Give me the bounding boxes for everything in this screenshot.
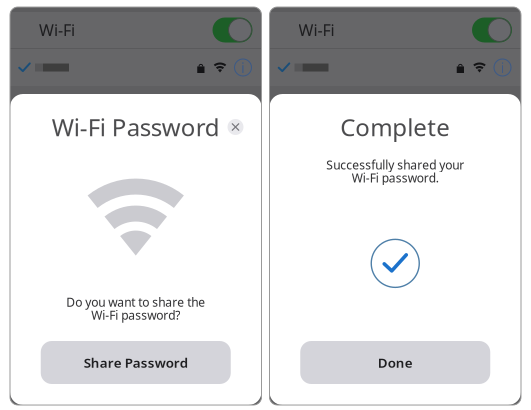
staticText: Do you want to share the bbox=[66, 294, 205, 310]
staticText: Done bbox=[378, 354, 413, 371]
button[interactable]: Done bbox=[300, 341, 490, 384]
staticText: Successfully shared your bbox=[326, 157, 464, 173]
button[interactable]: Share Password bbox=[41, 341, 231, 384]
staticText: Wi-Fi password? bbox=[91, 307, 180, 323]
staticText: Wi-Fi Password bbox=[52, 111, 220, 143]
staticText: Wi-Fi bbox=[298, 19, 334, 41]
button[interactable]: Close bbox=[227, 119, 243, 135]
staticText: i bbox=[500, 58, 504, 77]
staticText: Complete bbox=[340, 111, 450, 143]
staticText: Wi-Fi password. bbox=[352, 170, 439, 186]
staticText: Wi-Fi bbox=[39, 19, 75, 41]
staticText: Share Password bbox=[84, 354, 188, 371]
staticText: i bbox=[241, 58, 245, 77]
